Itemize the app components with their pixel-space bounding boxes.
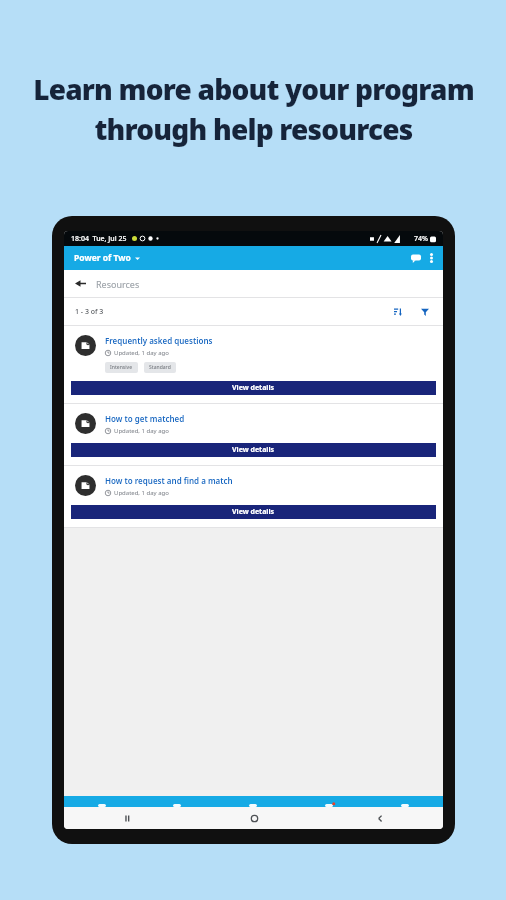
button[interactable]: View details (71, 381, 436, 395)
button[interactable]: Recents (64, 807, 191, 829)
staticText: Updated, 1 day ago (114, 489, 169, 497)
button[interactable]: Back (317, 807, 443, 829)
staticText: 18:04 Tue, Jul 25 (71, 234, 127, 244)
staticText: Power of Two (74, 252, 131, 264)
button[interactable]: Filter (415, 304, 434, 319)
button[interactable]: Tab 2 (139, 796, 215, 807)
staticText: Updated, 1 day ago (114, 349, 169, 357)
button[interactable]: Frequently asked questions (64, 326, 443, 404)
button[interactable]: Tab 3 (215, 796, 291, 807)
button[interactable]: Tab 1 (64, 796, 139, 807)
staticText: Standard (149, 364, 171, 371)
staticText: Intensive (110, 364, 133, 371)
staticText: Learn more about your program (33, 70, 474, 108)
staticText: View details (232, 383, 275, 393)
staticText: View details (232, 445, 275, 455)
staticText: How to request and find a match (105, 475, 233, 486)
button[interactable]: View details (71, 443, 436, 457)
staticText: 1 - 3 of 3 (75, 307, 104, 317)
button[interactable]: Tab 4 (291, 796, 367, 807)
staticText: 74% (414, 234, 428, 244)
button[interactable]: Tab 5 (367, 796, 443, 807)
button[interactable]: View details (71, 505, 436, 519)
button[interactable]: Sort (388, 304, 407, 319)
button[interactable]: Resources (64, 270, 443, 297)
button[interactable]: How to request and find a match (64, 466, 443, 528)
button[interactable]: Power of Two (73, 249, 141, 267)
staticText: through help resources (94, 110, 413, 148)
staticText: Updated, 1 day ago (114, 427, 169, 435)
button[interactable]: Messages (407, 249, 425, 267)
staticText: How to get matched (105, 413, 185, 424)
staticText: View details (232, 507, 275, 517)
button[interactable]: Home (191, 807, 317, 829)
staticText: Resources (96, 278, 140, 290)
staticText: Frequently asked questions (105, 335, 213, 346)
button[interactable]: How to get matched (64, 404, 443, 466)
button[interactable]: More options (425, 252, 437, 264)
